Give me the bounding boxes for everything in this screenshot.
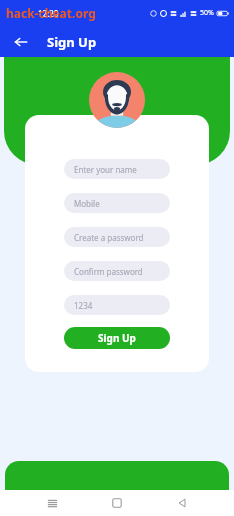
button[interactable]: Create a password: [64, 227, 170, 247]
button[interactable]: Home: [104, 490, 130, 516]
button[interactable]: 1234: [64, 295, 170, 315]
staticText: Sign Up: [47, 33, 97, 51]
staticText: Create a password: [74, 232, 144, 243]
staticText: hack-cheat.org: [6, 5, 96, 21]
button[interactable]: Confirm password: [64, 261, 170, 281]
staticText: Enter your name: [74, 164, 137, 175]
staticText: 1234: [74, 300, 93, 311]
button[interactable]: Profile photo: [89, 72, 145, 128]
button[interactable]: Back: [169, 490, 195, 516]
staticText: 50%: [200, 8, 214, 18]
button[interactable]: Mobile: [64, 193, 170, 213]
button[interactable]: Back: [8, 29, 34, 55]
staticText: Sign Up: [98, 331, 136, 345]
button[interactable]: Recent apps: [39, 490, 65, 516]
staticText: Confirm password: [74, 266, 143, 277]
button[interactable]: Sign Up: [64, 327, 170, 349]
button[interactable]: Enter your name: [64, 159, 170, 179]
staticText: Mobile: [74, 198, 100, 209]
staticText: 12:20: [38, 8, 59, 19]
